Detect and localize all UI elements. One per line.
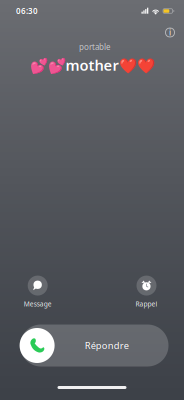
staticText: i xyxy=(169,27,171,38)
staticText: portable xyxy=(79,42,111,52)
staticText: Répondre xyxy=(85,339,129,352)
button[interactable]: Call details xyxy=(160,22,180,42)
button[interactable]: Answer xyxy=(20,324,168,366)
staticText: Rappel xyxy=(135,300,157,308)
button[interactable]: Rappel xyxy=(116,276,176,308)
staticText: 06:30 xyxy=(16,6,38,16)
staticText: Message xyxy=(24,300,52,308)
button[interactable]: Message xyxy=(8,276,68,308)
staticText: 💕💕mother❤️❤️ xyxy=(29,55,154,75)
